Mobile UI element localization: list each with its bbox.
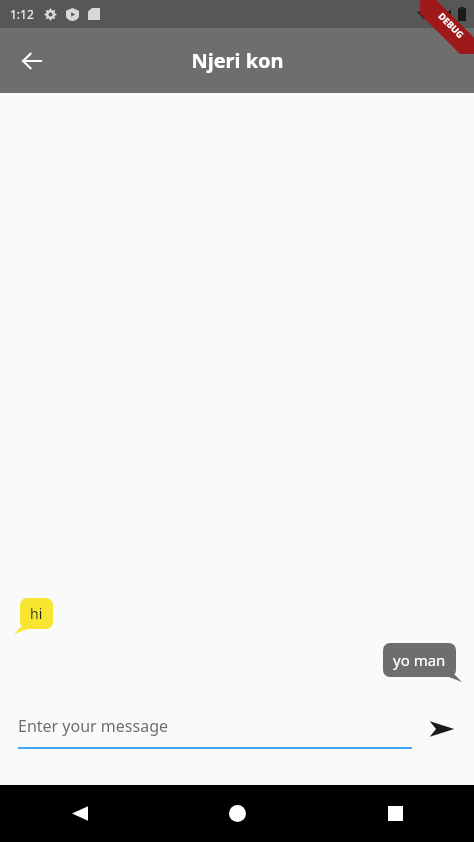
button[interactable]: hi [20, 598, 53, 629]
staticText: Enter your message [18, 715, 169, 737]
button[interactable]: Recent apps [316, 785, 474, 842]
staticText: 1:12 [10, 6, 34, 22]
button[interactable]: Back [8, 37, 56, 85]
button[interactable]: Send [418, 705, 466, 753]
button[interactable]: Enter your message [18, 705, 412, 749]
staticText: Njeri kon [191, 47, 284, 74]
button[interactable]: Home [158, 785, 316, 842]
staticText: DEBUG [436, 10, 467, 40]
staticText: yo man [393, 650, 446, 670]
button[interactable]: yo man [383, 643, 456, 677]
button[interactable]: Back [0, 785, 158, 842]
staticText: hi [30, 604, 43, 623]
